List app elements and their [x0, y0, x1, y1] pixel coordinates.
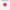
- button[interactable]: Start Workout: [3, 3, 7, 6]
- staticText: Workout: [2, 0, 8, 2]
